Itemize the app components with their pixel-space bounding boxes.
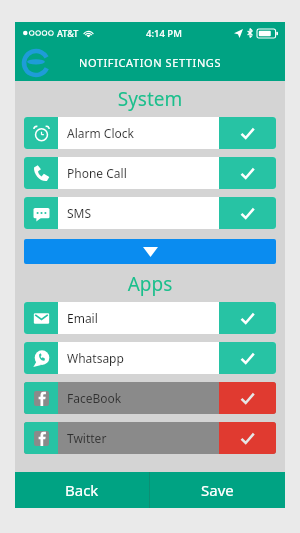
staticText: FaceBook xyxy=(67,390,122,406)
staticText: SMS xyxy=(67,205,92,221)
button[interactable]: SMS xyxy=(24,197,276,229)
staticText: Save xyxy=(201,480,234,500)
button[interactable]: Toggle Alarm Clock xyxy=(219,117,276,149)
button[interactable]: Toggle Twitter xyxy=(219,422,276,454)
staticText: System xyxy=(15,86,285,112)
staticText: Email xyxy=(67,310,98,326)
button[interactable]: Toggle Whatsapp xyxy=(219,342,276,374)
button[interactable]: Whatsapp xyxy=(24,342,276,374)
button[interactable]: Save xyxy=(150,472,285,508)
button[interactable]: Back xyxy=(15,472,149,508)
button[interactable]: Toggle Email xyxy=(219,302,276,334)
staticText: Apps xyxy=(15,271,285,297)
button[interactable]: Twitter xyxy=(24,422,276,454)
staticText: Back xyxy=(65,480,99,500)
staticText: 4:14 PM xyxy=(146,27,182,40)
staticText: Phone Call xyxy=(67,165,127,181)
staticText: Alarm Clock xyxy=(67,125,134,141)
button[interactable]: Toggle FaceBook xyxy=(219,382,276,414)
button[interactable]: Email xyxy=(24,302,276,334)
button[interactable]: Phone Call xyxy=(24,157,276,189)
button[interactable]: Toggle Phone Call xyxy=(219,157,276,189)
button[interactable]: FaceBook xyxy=(24,382,276,414)
staticText: Whatsapp xyxy=(67,350,124,366)
staticText: AT&T xyxy=(57,27,79,39)
button[interactable]: App logo xyxy=(21,48,51,78)
button[interactable]: Alarm Clock xyxy=(24,117,276,149)
button[interactable]: Show more xyxy=(24,239,276,264)
staticText: Twitter xyxy=(67,430,107,446)
staticText: NOTIFICATION SETTINGS xyxy=(79,55,222,70)
button[interactable]: Toggle SMS xyxy=(219,197,276,229)
